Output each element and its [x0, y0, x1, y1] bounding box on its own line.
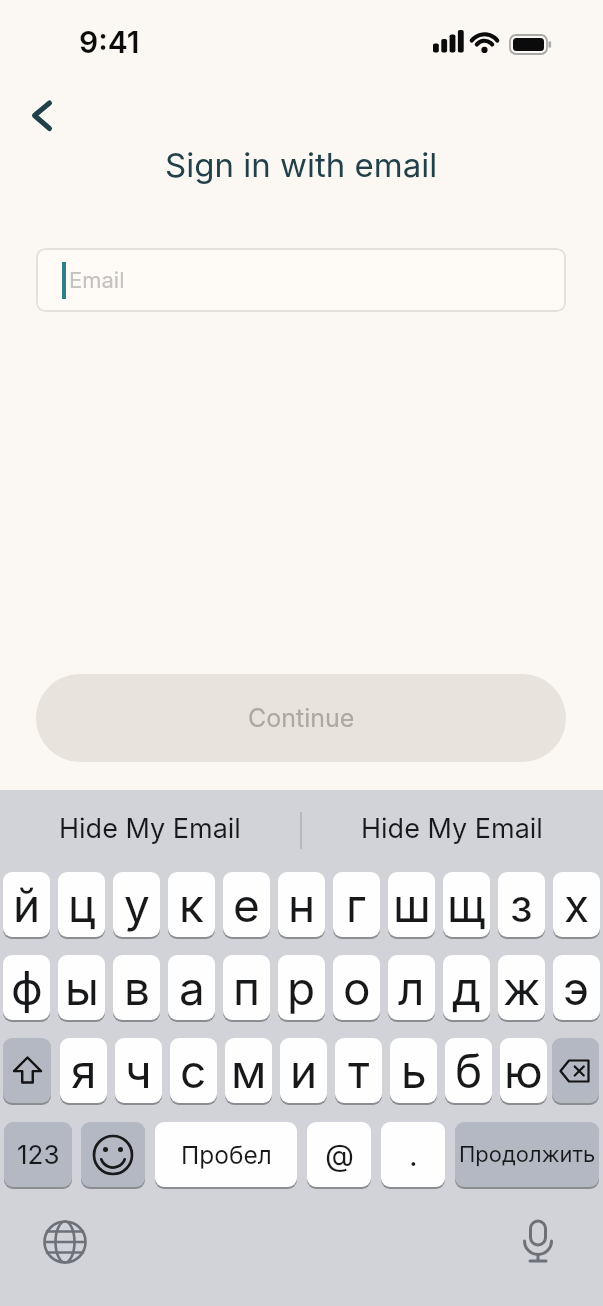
- staticText: ш: [393, 877, 431, 933]
- button[interactable]: ц: [58, 872, 105, 937]
- staticText: г: [346, 877, 367, 933]
- button[interactable]: л: [388, 955, 435, 1020]
- button[interactable]: т: [335, 1038, 382, 1103]
- staticText: з: [510, 877, 533, 933]
- staticText: Hide My Email: [59, 812, 241, 845]
- button[interactable]: м: [225, 1038, 272, 1103]
- staticText: м: [231, 1043, 267, 1099]
- staticText: ю: [504, 1043, 543, 1099]
- staticText: д: [452, 960, 481, 1016]
- staticText: к: [179, 877, 204, 933]
- staticText: ы: [65, 960, 99, 1016]
- button[interactable]: н: [278, 872, 325, 937]
- staticText: й: [13, 877, 41, 933]
- button[interactable]: г: [333, 872, 380, 937]
- button[interactable]: з: [498, 872, 545, 937]
- button[interactable]: ю: [500, 1038, 547, 1103]
- button[interactable]: ы: [58, 955, 105, 1020]
- staticText: @: [325, 1137, 354, 1173]
- staticText: н: [288, 877, 316, 933]
- button[interactable]: й: [3, 872, 50, 937]
- button[interactable]: о: [333, 955, 380, 1020]
- button[interactable]: у: [113, 872, 160, 937]
- staticText: Sign in with email: [165, 145, 438, 185]
- button[interactable]: Пробел: [155, 1122, 297, 1187]
- staticText: ь: [401, 1043, 427, 1099]
- button[interactable]: Hide My Email: [0, 801, 300, 855]
- staticText: ж: [503, 960, 541, 1016]
- button[interactable]: я: [60, 1038, 107, 1103]
- staticText: 9:41: [79, 24, 140, 60]
- staticText: х: [564, 877, 590, 933]
- button[interactable]: ш: [388, 872, 435, 937]
- button[interactable]: х: [553, 872, 600, 937]
- button[interactable]: ч: [115, 1038, 162, 1103]
- button[interactable]: .: [381, 1122, 445, 1187]
- staticText: в: [124, 960, 150, 1016]
- staticText: э: [563, 960, 590, 1016]
- button[interactable]: д: [443, 955, 490, 1020]
- staticText: у: [124, 877, 150, 933]
- staticText: б: [455, 1043, 483, 1099]
- button[interactable]: п: [223, 955, 270, 1020]
- staticText: ц: [68, 877, 96, 933]
- button[interactable]: [22, 92, 66, 138]
- button[interactable]: [42, 1219, 88, 1265]
- button[interactable]: б: [445, 1038, 492, 1103]
- staticText: т: [348, 1043, 370, 1099]
- staticText: Hide My Email: [361, 812, 543, 845]
- button[interactable]: Continue: [36, 674, 566, 762]
- staticText: л: [398, 960, 425, 1016]
- staticText: с: [180, 1043, 207, 1099]
- button[interactable]: [3, 1038, 51, 1103]
- button[interactable]: Email: [36, 248, 566, 312]
- staticText: 123: [17, 1139, 60, 1170]
- staticText: а: [179, 960, 205, 1016]
- button[interactable]: р: [278, 955, 325, 1020]
- staticText: о: [343, 960, 371, 1016]
- staticText: ч: [125, 1043, 152, 1099]
- button[interactable]: [515, 1219, 561, 1265]
- button[interactable]: ж: [498, 955, 545, 1020]
- button[interactable]: щ: [443, 872, 490, 937]
- button[interactable]: с: [170, 1038, 217, 1103]
- button[interactable]: в: [113, 955, 160, 1020]
- button[interactable]: Hide My Email: [302, 801, 602, 855]
- button[interactable]: Продолжить: [455, 1122, 599, 1187]
- staticText: Пробел: [181, 1140, 272, 1170]
- button[interactable]: е: [223, 872, 270, 937]
- staticText: Продолжить: [459, 1141, 596, 1168]
- button[interactable]: э: [553, 955, 600, 1020]
- staticText: я: [71, 1043, 97, 1099]
- staticText: .: [409, 1137, 418, 1173]
- button[interactable]: ь: [390, 1038, 437, 1103]
- staticText: и: [290, 1043, 318, 1099]
- button[interactable]: [552, 1038, 599, 1103]
- staticText: щ: [447, 877, 486, 933]
- staticText: ф: [11, 960, 43, 1016]
- button[interactable]: [81, 1122, 145, 1187]
- staticText: Email: [69, 267, 125, 294]
- staticText: е: [233, 877, 260, 933]
- staticText: р: [287, 960, 316, 1016]
- staticText: Continue: [248, 703, 355, 733]
- button[interactable]: и: [280, 1038, 327, 1103]
- button[interactable]: к: [168, 872, 215, 937]
- button[interactable]: @: [307, 1122, 371, 1187]
- staticText: п: [233, 960, 261, 1016]
- button[interactable]: ф: [3, 955, 50, 1020]
- button[interactable]: 123: [4, 1122, 72, 1187]
- button[interactable]: а: [168, 955, 215, 1020]
